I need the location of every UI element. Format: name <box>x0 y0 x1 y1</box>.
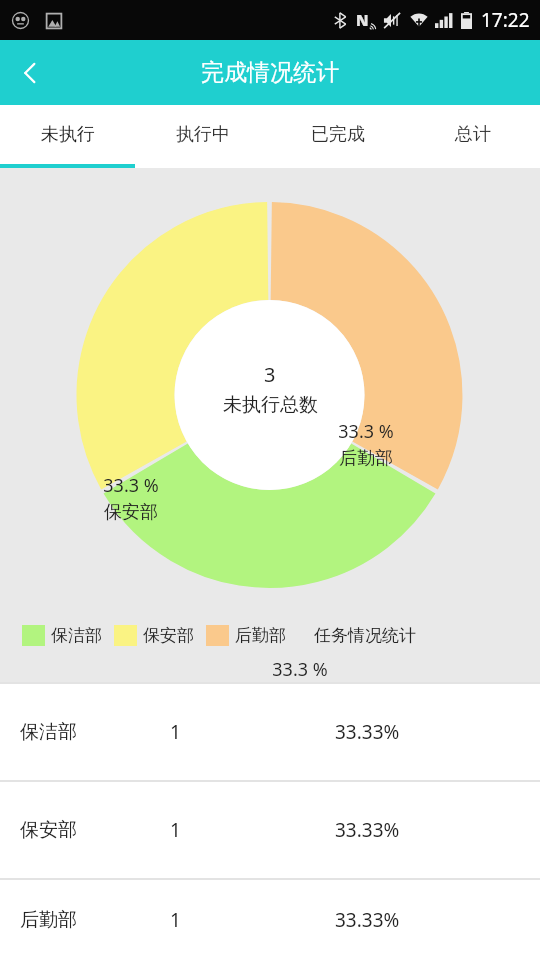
staticText: 3 <box>264 361 276 388</box>
staticText: 完成情况统计 <box>201 58 339 87</box>
staticText: 执行中 <box>176 123 230 146</box>
button[interactable]: 保安部 <box>0 782 540 878</box>
staticText: 后勤部 <box>20 908 170 932</box>
staticText: 1 <box>170 907 335 933</box>
staticText: 17:22 <box>481 7 530 33</box>
staticText: 33.33% <box>335 719 400 745</box>
button[interactable]: 未执行 <box>0 105 135 164</box>
button[interactable]: 已完成 <box>270 105 405 164</box>
button[interactable]: 保洁部 <box>0 684 540 780</box>
staticText: 总计 <box>455 123 491 146</box>
staticText: 任务情况统计 <box>314 625 416 646</box>
staticText: 后勤部 <box>339 447 393 470</box>
staticText: N <box>356 10 369 30</box>
staticText: 保安部 <box>104 501 158 524</box>
staticText: 33.3 % <box>338 419 394 444</box>
staticText: 未执行总数 <box>223 393 318 417</box>
button[interactable]: Back <box>0 40 62 105</box>
staticText: 33.3 % <box>103 473 159 498</box>
staticText: 保洁部 <box>20 720 170 744</box>
staticText: 已完成 <box>311 123 365 146</box>
staticText: 33.3 % <box>272 657 328 682</box>
staticText: 保安部 <box>143 625 194 646</box>
staticText: 保洁部 <box>51 625 102 646</box>
button[interactable]: 总计 <box>405 105 540 164</box>
staticText: 后勤部 <box>235 625 286 646</box>
staticText: 1 <box>170 817 335 843</box>
staticText: 未执行 <box>41 123 95 146</box>
staticText: 1 <box>170 719 335 745</box>
button[interactable]: 后勤部 <box>0 880 540 960</box>
staticText: 保安部 <box>20 818 170 842</box>
button[interactable]: 执行中 <box>135 105 270 164</box>
staticText: 33.33% <box>335 817 400 843</box>
staticText: 33.33% <box>335 907 400 933</box>
